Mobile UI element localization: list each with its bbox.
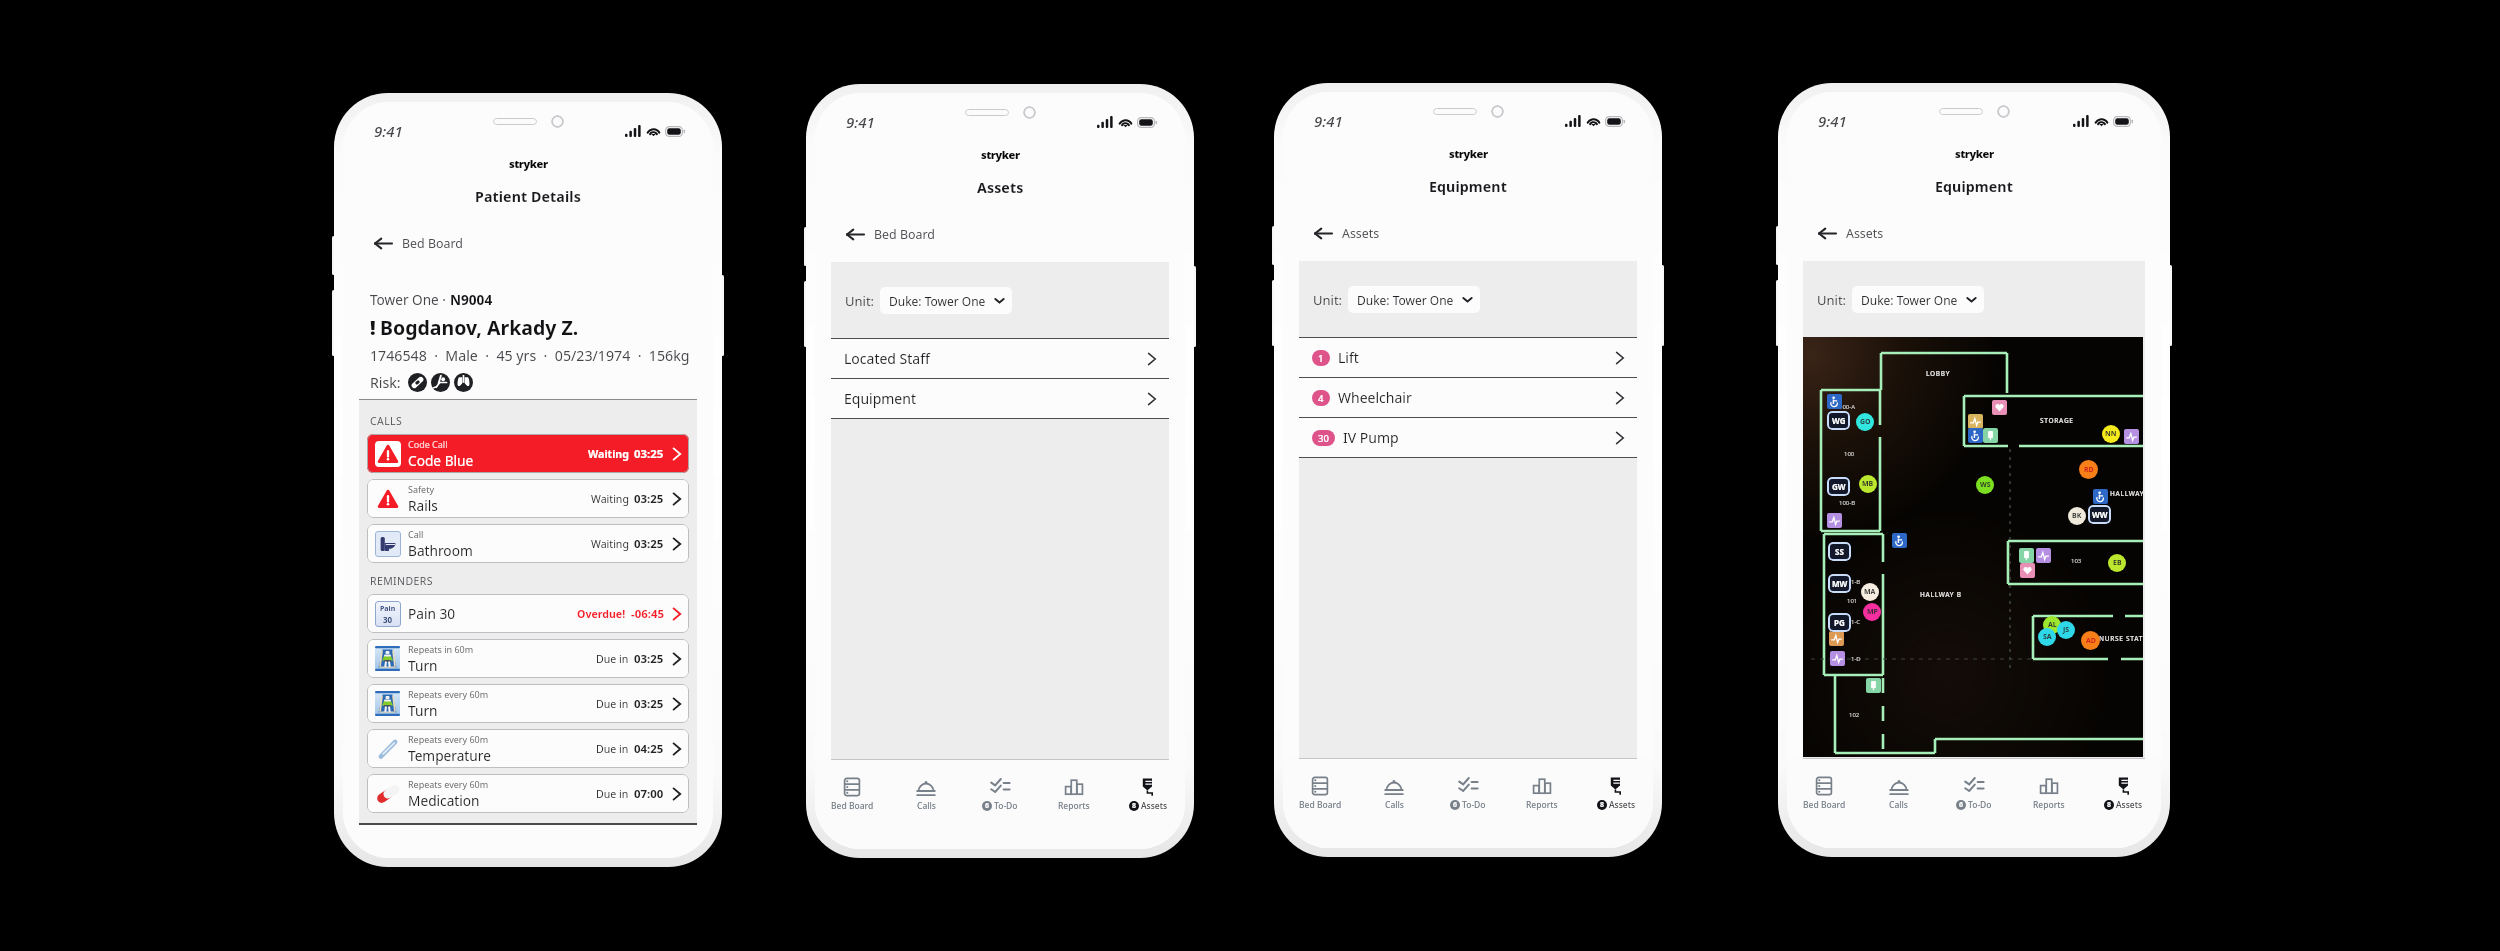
staticText: REMINDERS	[370, 574, 433, 588]
staticText: 6	[1959, 800, 1964, 810]
staticText: stryker	[981, 147, 1020, 162]
staticText: HALLWAY	[2110, 489, 2145, 498]
staticText: AL	[2048, 620, 2057, 630]
button[interactable]: Back	[1818, 206, 2161, 261]
staticText: 30	[1318, 432, 1329, 445]
button[interactable]: Equipment	[844, 379, 1160, 418]
staticText: Turn	[408, 701, 438, 720]
staticText: Due in	[596, 787, 629, 801]
staticText: Wheelchair	[1338, 388, 1412, 407]
staticText: To-Do	[994, 800, 1018, 812]
staticText: 1-B	[1851, 578, 1861, 586]
staticText: Repeats every 60m	[408, 688, 489, 700]
staticText: MP	[1867, 607, 1878, 617]
button[interactable]: Duke: Tower One	[1861, 286, 1977, 313]
staticText: Risk:	[370, 373, 401, 392]
staticText: Assets	[1141, 800, 1168, 812]
staticText: 03:25	[634, 696, 664, 712]
staticText: 1-C	[1851, 618, 1861, 626]
staticText: SA	[2043, 632, 2052, 642]
staticText: WS	[1980, 480, 1991, 490]
button[interactable]: Bed Board	[815, 777, 889, 849]
staticText: BK	[2072, 511, 2082, 521]
button[interactable]: Back	[1314, 206, 1653, 261]
staticText: !	[370, 314, 376, 341]
staticText: 4	[1318, 392, 1324, 405]
staticText: Due in	[596, 742, 629, 756]
button[interactable]: Duke: Tower One	[1357, 286, 1473, 313]
button[interactable]: Code Call	[367, 434, 689, 473]
staticText: Assets	[977, 178, 1024, 197]
staticText: GO	[1860, 417, 1871, 427]
staticText: 100-B	[1839, 499, 1856, 507]
staticText: Temperature	[408, 746, 491, 765]
staticText: Duke: Tower One	[1861, 292, 1958, 308]
staticText: Duke: Tower One	[1357, 292, 1454, 308]
button[interactable]: 6	[1936, 776, 2011, 848]
staticText: Bed Board	[1803, 799, 1846, 811]
staticText: Unit:	[1313, 291, 1343, 309]
staticText: Waiting	[588, 447, 629, 461]
staticText: Calls	[917, 800, 936, 812]
button[interactable]: Reports	[2011, 776, 2086, 848]
button[interactable]: Repeats every 60m	[367, 774, 689, 813]
staticText: Tower One ·	[370, 290, 450, 309]
staticText: Overdue!	[577, 607, 626, 621]
button[interactable]: Safety	[367, 479, 689, 518]
staticText: Rails	[408, 496, 438, 515]
button[interactable]: 1	[1312, 338, 1628, 377]
staticText: Reports	[1526, 799, 1558, 811]
button[interactable]: Located Staff	[844, 339, 1160, 378]
staticText: 03:25	[634, 536, 664, 552]
button[interactable]: 6	[963, 777, 1037, 849]
button[interactable]: Calls	[1357, 776, 1431, 848]
staticText: Repeats every 60m	[408, 733, 489, 745]
staticText: Equipment	[1429, 177, 1507, 196]
staticText: stryker	[509, 156, 548, 171]
button[interactable]: Bed Board	[1787, 776, 1861, 848]
staticText: Due in	[596, 697, 629, 711]
button[interactable]: 6	[1431, 776, 1505, 848]
staticText: MW	[1832, 578, 1848, 589]
staticText: Unit:	[1817, 291, 1847, 309]
button[interactable]: 8	[1579, 776, 1653, 848]
staticText: 6	[1453, 800, 1458, 810]
button[interactable]: 8	[2086, 776, 2161, 848]
staticText: -06:45	[631, 606, 664, 622]
staticText: CALLS	[370, 414, 403, 428]
button[interactable]: Repeats every 60m	[367, 729, 689, 768]
staticText: Patient Details	[475, 187, 581, 206]
button[interactable]: Call	[367, 524, 689, 563]
staticText: Lift	[1338, 348, 1359, 367]
button[interactable]: Repeats in 60m	[367, 639, 689, 678]
staticText: 9:41	[1818, 111, 1847, 131]
button[interactable]: 4	[1312, 378, 1628, 417]
other: Back	[374, 238, 393, 249]
button[interactable]: 30	[1312, 418, 1628, 457]
staticText: Repeats in 60m	[408, 643, 474, 655]
button[interactable]: Back	[374, 216, 713, 271]
staticText: Bathroom	[408, 541, 473, 560]
button[interactable]: 8	[1111, 777, 1185, 849]
staticText: Located Staff	[844, 349, 930, 368]
button[interactable]: Reports	[1037, 777, 1111, 849]
button[interactable]: Calls	[1861, 776, 1936, 848]
staticText: Due in	[596, 652, 629, 666]
other: Back	[1314, 228, 1333, 239]
staticText: To-Do	[1462, 799, 1486, 811]
staticText: 30	[383, 614, 393, 625]
staticText: 03:25	[634, 491, 664, 507]
button[interactable]: Reports	[1505, 776, 1579, 848]
staticText: NURSE STAT	[2099, 634, 2144, 643]
staticText: WW	[2092, 509, 2108, 520]
button[interactable]: Calls	[889, 777, 963, 849]
staticText: Waiting	[591, 537, 629, 551]
button[interactable]: Bed Board	[1283, 776, 1357, 848]
button[interactable]: Back	[846, 207, 1185, 262]
button[interactable]: Duke: Tower One	[889, 287, 1005, 314]
staticText: Bed Board	[831, 800, 874, 812]
button[interactable]: Pain	[367, 594, 689, 633]
staticText: NN	[2105, 429, 2117, 439]
staticText: stryker	[1955, 146, 1994, 161]
button[interactable]: Repeats every 60m	[367, 684, 689, 723]
